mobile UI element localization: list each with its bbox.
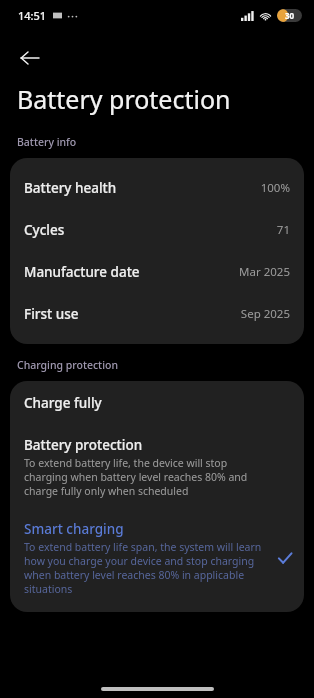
staticText: Battery protection <box>24 436 143 454</box>
button[interactable]: Cycles <box>10 209 304 251</box>
staticText: To extend battery life span, the system … <box>24 540 270 596</box>
button[interactable]: Battery protection <box>10 434 304 500</box>
staticText: 14:51 <box>18 8 47 23</box>
button[interactable]: First use <box>10 293 304 335</box>
button[interactable]: Smart charging <box>10 518 304 598</box>
other: Selected <box>276 549 294 567</box>
staticText: Sep 2025 <box>240 306 290 322</box>
staticText: 71 <box>276 222 290 238</box>
button[interactable]: Charge fully <box>10 381 304 425</box>
staticText: First use <box>24 305 79 323</box>
button[interactable]: Manufacture date <box>10 251 304 293</box>
staticText: Manufacture date <box>24 263 140 281</box>
button[interactable]: Battery health <box>10 167 304 209</box>
staticText: 100% <box>260 180 290 196</box>
staticText: Battery protection <box>17 82 231 116</box>
staticText: Charge fully <box>24 394 102 412</box>
staticText: Mar 2025 <box>239 264 290 280</box>
staticText: To extend battery life, the device will … <box>24 456 260 498</box>
button[interactable]: Back <box>8 36 52 80</box>
staticText: Smart charging <box>24 520 124 538</box>
staticText: Battery info <box>17 135 77 149</box>
staticText: Charging protection <box>17 358 118 372</box>
staticText: Cycles <box>24 221 65 239</box>
staticText: Battery health <box>24 179 117 197</box>
staticText: 30 <box>285 10 295 21</box>
